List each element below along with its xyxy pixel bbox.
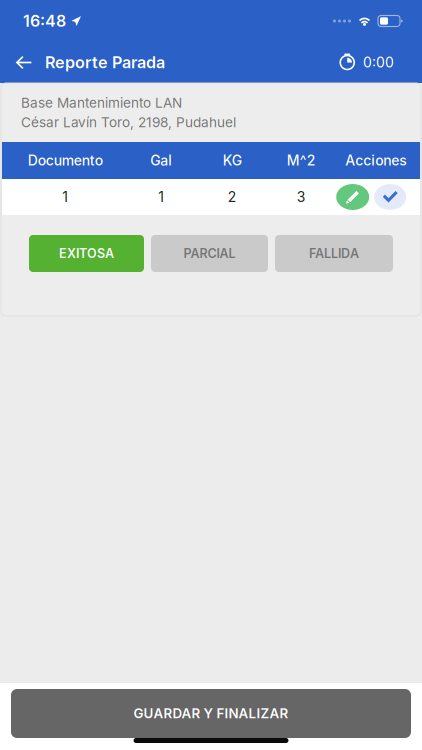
button[interactable]: Confirmar [374, 184, 406, 210]
staticText: Acciones [345, 152, 407, 169]
button[interactable]: EXITOSA [29, 235, 144, 272]
button[interactable]: GUARDAR Y FINALIZAR [11, 689, 411, 738]
button[interactable]: FALLIDA [275, 235, 393, 272]
button[interactable]: Editar [336, 184, 369, 210]
staticText: Documento [28, 152, 103, 169]
staticText: KG [223, 152, 242, 169]
staticText: Reporte Parada [45, 53, 165, 72]
staticText: Base Mantenimiento LAN [21, 94, 182, 111]
staticText: FALLIDA [309, 246, 359, 261]
staticText: GUARDAR Y FINALIZAR [133, 705, 288, 721]
staticText: EXITOSA [59, 246, 114, 261]
staticText: 1 [62, 188, 68, 205]
staticText: César Lavín Toro, 2198, Pudahuel [21, 114, 236, 130]
staticText: 3 [297, 188, 306, 205]
button[interactable]: PARCIAL [151, 235, 268, 272]
staticText: 1 [158, 188, 164, 205]
staticText: 2 [228, 188, 237, 205]
staticText: M^2 [287, 152, 316, 169]
button[interactable]: 0:00 [339, 42, 422, 83]
button[interactable]: Reporte Parada [0, 42, 175, 83]
staticText: Gal [150, 152, 172, 169]
staticText: PARCIAL [183, 246, 235, 261]
staticText: 0:00 [363, 54, 394, 71]
staticText: 16:48 [23, 11, 66, 31]
